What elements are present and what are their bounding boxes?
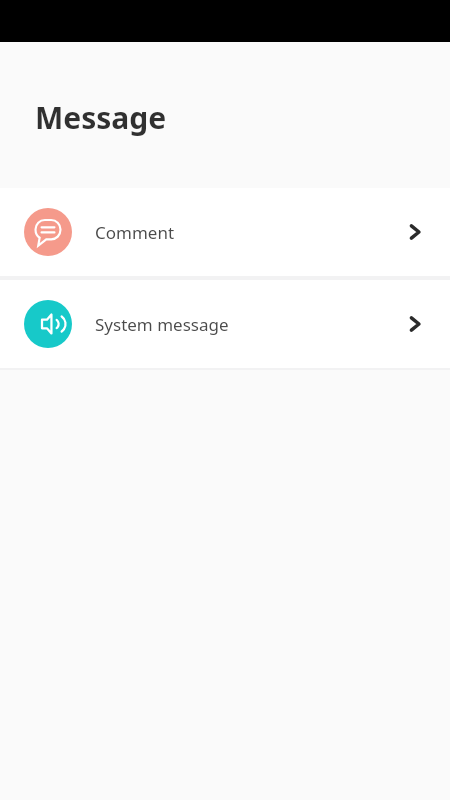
other: Open [398, 215, 432, 249]
staticText: Comment [95, 221, 398, 244]
staticText: System message [95, 313, 398, 336]
button[interactable]: Comment [0, 188, 450, 276]
other: Open [398, 307, 432, 341]
button[interactable]: System message [0, 280, 450, 368]
staticText: Message [35, 97, 167, 138]
